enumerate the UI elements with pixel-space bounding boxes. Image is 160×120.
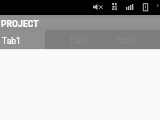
staticText: Tab3 bbox=[116, 36, 135, 46]
button[interactable]: PROJECT bbox=[0, 15, 160, 30]
staticText: Tab2 bbox=[69, 36, 88, 46]
other: Battery bbox=[143, 3, 148, 11]
staticText: Tab1 bbox=[2, 36, 21, 46]
button[interactable]: Tab1 bbox=[0, 30, 45, 49]
other: 2G mobile data bbox=[112, 3, 117, 10]
staticText: PROJECT bbox=[1, 19, 39, 29]
other: Sound muted bbox=[93, 4, 103, 10]
other: Mobile signal strength bbox=[126, 4, 134, 10]
